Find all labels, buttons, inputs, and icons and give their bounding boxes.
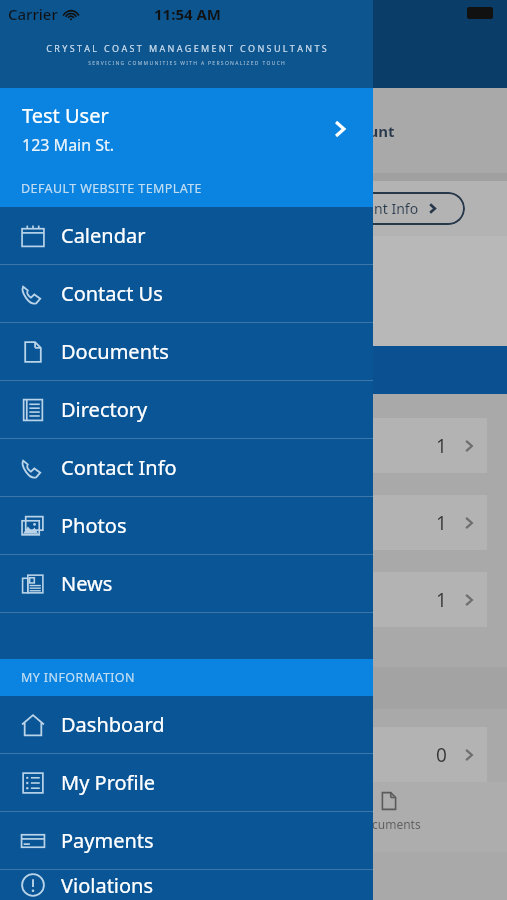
button[interactable]: Directory — [0, 381, 373, 438]
staticText: Documents — [356, 816, 421, 832]
staticText: 1 — [436, 587, 447, 613]
staticText: 123 Main St. — [22, 134, 115, 156]
button[interactable]: Payments — [0, 812, 373, 869]
button[interactable]: Dashboard — [0, 696, 373, 753]
button[interactable]: ount Info — [330, 192, 465, 225]
button[interactable]: Photos — [0, 497, 373, 554]
staticText: 1 — [436, 433, 447, 459]
button[interactable]: 0 — [20, 727, 487, 782]
staticText: Payments — [61, 827, 154, 854]
button[interactable]: Violations — [0, 870, 373, 900]
staticText: Violations — [61, 872, 154, 899]
staticText: 1 — [436, 510, 447, 536]
button[interactable]: Documents — [0, 323, 373, 380]
staticText: 0 — [436, 742, 447, 768]
staticText: Calendar — [61, 222, 146, 249]
button[interactable]: My Profile — [0, 754, 373, 811]
button[interactable]: 1 — [20, 418, 487, 473]
staticText: Add Account — [300, 121, 395, 141]
staticText: News — [61, 570, 113, 597]
staticText: Documents — [61, 338, 169, 365]
button[interactable]: Contact Us — [0, 265, 373, 322]
staticText: Carrier — [8, 4, 58, 24]
staticText: Test User — [22, 102, 109, 129]
button[interactable]: Test User — [0, 88, 373, 170]
staticText: DEFAULT WEBSITE TEMPLATE — [21, 180, 202, 197]
staticText: S E R V I C I N G C O M M U N I T I E S … — [88, 60, 285, 67]
staticText: Dashboard — [61, 711, 165, 738]
staticText: Directory — [61, 396, 148, 423]
button[interactable]: News — [0, 555, 373, 612]
button[interactable]: 1 — [20, 572, 487, 627]
staticText: ount Info — [357, 199, 419, 218]
staticText: MY INFORMATION — [21, 669, 135, 686]
staticText: Photos — [61, 512, 127, 539]
staticText: Contact Us — [61, 280, 163, 307]
button[interactable]: Contact Info — [0, 439, 373, 496]
staticText: My Profile — [61, 769, 156, 796]
staticText: 11:54 AM — [154, 4, 221, 24]
button[interactable]: 1 — [20, 495, 487, 550]
button[interactable]: Calendar — [0, 207, 373, 264]
staticText: Contact Info — [61, 454, 177, 481]
staticText: C R Y S T A L C O A S T M A N A G E M E … — [46, 42, 327, 54]
